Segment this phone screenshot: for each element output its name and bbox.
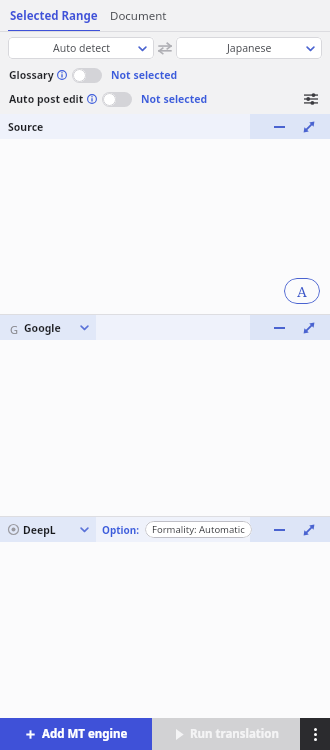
staticText: G (10, 322, 19, 334)
staticText: Run translation (190, 726, 279, 742)
button[interactable]: Formality: Automatic (145, 521, 252, 538)
button[interactable]: Add MT engine (0, 718, 152, 750)
button[interactable]: Selected Range (10, 0, 98, 32)
button[interactable]: Collapse (264, 517, 294, 542)
staticText: Google (24, 321, 61, 335)
button[interactable]: Toggle (72, 68, 102, 83)
staticText: Not selected (141, 92, 208, 106)
button[interactable]: DeepL (8, 517, 96, 542)
staticText: Glossary (9, 68, 54, 82)
staticText: DeepL (23, 523, 56, 537)
button[interactable]: Document (110, 0, 167, 32)
button[interactable]: Toggle (102, 92, 132, 107)
button[interactable]: Japanese (176, 37, 322, 59)
staticText: Source (8, 120, 44, 134)
button[interactable]: More options (300, 718, 330, 750)
button[interactable]: Collapse (264, 114, 294, 139)
button[interactable]: Expand (294, 114, 324, 139)
button[interactable]: Collapse (264, 315, 294, 340)
button[interactable]: Not selected (141, 92, 208, 106)
staticText: Not selected (111, 68, 178, 82)
button[interactable]: Auto detect (8, 37, 154, 59)
staticText: Auto post edit (9, 92, 84, 106)
staticText: Auto detect (53, 41, 110, 55)
button[interactable]: Settings (300, 88, 322, 110)
staticText: Option: (102, 523, 140, 537)
staticText: Formality: Automatic (152, 523, 245, 536)
button[interactable]: Font settings (284, 278, 320, 304)
staticText: Add MT engine (42, 726, 128, 742)
button[interactable]: G (8, 315, 96, 340)
button[interactable]: Expand (294, 517, 324, 542)
button[interactable]: Expand (294, 315, 324, 340)
staticText: A (297, 282, 307, 301)
button[interactable]: Swap languages (154, 32, 176, 64)
staticText: Document (110, 8, 167, 24)
button[interactable]: Not selected (111, 68, 178, 82)
staticText: Japanese (227, 41, 272, 55)
staticText: Selected Range (10, 8, 98, 24)
button[interactable]: Run translation (152, 718, 300, 750)
